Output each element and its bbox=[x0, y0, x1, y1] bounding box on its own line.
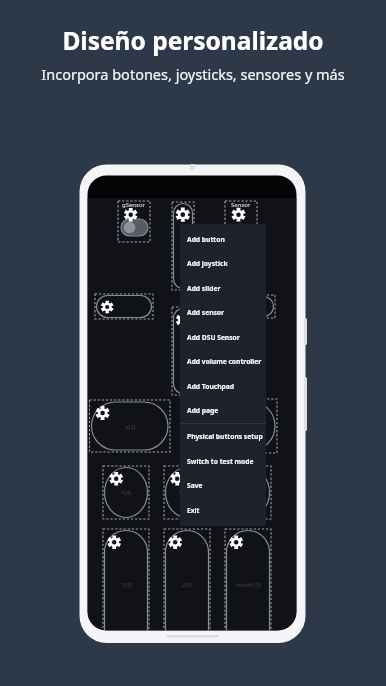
staticText: reset(13) bbox=[236, 581, 261, 589]
staticText: gSensor bbox=[122, 201, 146, 209]
staticText: Physical buttons setup bbox=[187, 432, 263, 441]
button[interactable]: Add slider bbox=[180, 276, 266, 300]
button[interactable]: Physical buttons setup bbox=[180, 424, 266, 448]
button[interactable]: Exit bbox=[180, 498, 266, 522]
staticText: Add sensor bbox=[187, 308, 225, 317]
staticText: Add joystick bbox=[187, 259, 228, 268]
staticText: 1(3) bbox=[121, 581, 132, 589]
staticText: home bbox=[179, 489, 196, 497]
staticText: Add slider bbox=[187, 284, 221, 293]
staticText: 2(0) bbox=[182, 581, 193, 589]
button[interactable]: Switch to test mode bbox=[180, 449, 266, 473]
button[interactable]: Add button bbox=[180, 227, 266, 251]
button[interactable]: Add Touchpad bbox=[180, 374, 266, 398]
staticText: Incorpora botones, joysticks, sensores y… bbox=[41, 64, 345, 84]
button[interactable]: Add page bbox=[180, 398, 266, 422]
staticText: +(4) bbox=[121, 489, 132, 497]
staticText: Save bbox=[187, 481, 203, 490]
staticText: Add volume controller bbox=[187, 357, 262, 366]
button[interactable]: Save bbox=[180, 473, 266, 497]
button[interactable]: Add sensor bbox=[180, 300, 266, 324]
staticText: Add page bbox=[187, 406, 219, 415]
staticText: Add button bbox=[187, 235, 225, 244]
button[interactable]: Add DSU Sensor bbox=[180, 325, 266, 349]
button[interactable]: Add volume controller bbox=[180, 349, 266, 373]
staticText: Add Touchpad bbox=[187, 382, 234, 391]
staticText: Sensor bbox=[231, 201, 251, 209]
staticText: Exit bbox=[187, 506, 200, 515]
staticText: Add DSU Sensor bbox=[187, 333, 240, 342]
staticText: Switch to test mode bbox=[187, 457, 254, 466]
button[interactable]: Add joystick bbox=[180, 251, 266, 275]
staticText: a(2) bbox=[125, 423, 136, 431]
staticText: Diseño personalizado bbox=[62, 24, 324, 57]
